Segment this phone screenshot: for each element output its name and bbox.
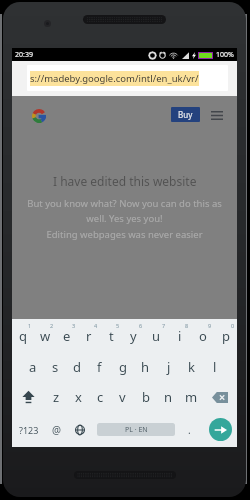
button[interactable]: z: [45, 382, 67, 412]
staticText: 20:39: [15, 50, 33, 60]
staticText: r: [86, 327, 92, 345]
staticText: y: [130, 327, 137, 345]
staticText: h: [141, 358, 150, 376]
button[interactable]: Enter: [209, 418, 232, 441]
staticText: .: [188, 423, 191, 437]
button[interactable]: m: [180, 382, 203, 412]
staticText: 2: [50, 322, 54, 329]
staticText: 0: [231, 322, 235, 329]
staticText: c: [97, 388, 104, 406]
staticText: t: [109, 327, 114, 345]
staticText: s://madeby.google.com/intl/en_uk/vr/: [30, 72, 199, 85]
other: Google: [32, 109, 46, 123]
button[interactable]: 5: [100, 319, 122, 352]
button[interactable]: Change language: [68, 412, 91, 447]
staticText: 5: [116, 322, 120, 329]
button[interactable]: d: [66, 352, 88, 382]
button[interactable]: 7: [145, 319, 168, 352]
button[interactable]: 0: [214, 319, 237, 352]
button[interactable]: c: [89, 382, 111, 412]
staticText: e: [63, 327, 71, 345]
button[interactable]: Shift: [12, 382, 45, 412]
staticText: Buy: [178, 109, 193, 120]
button[interactable]: n: [157, 382, 180, 412]
staticText: 4: [94, 322, 98, 329]
button[interactable]: 1: [12, 319, 34, 352]
button[interactable]: s: [44, 352, 66, 382]
button[interactable]: v: [111, 382, 134, 412]
staticText: o: [199, 327, 207, 345]
staticText: m: [185, 388, 198, 406]
staticText: l: [213, 358, 217, 376]
staticText: 8: [185, 322, 189, 329]
staticText: z: [53, 388, 60, 406]
button[interactable]: b: [134, 382, 157, 412]
staticText: a: [29, 358, 37, 376]
button[interactable]: j: [157, 352, 180, 382]
staticText: d: [73, 358, 81, 376]
button[interactable]: f: [88, 352, 111, 382]
button[interactable]: 9: [191, 319, 214, 352]
button[interactable]: Buy: [171, 107, 200, 122]
staticText: f: [97, 358, 102, 376]
staticText: s: [52, 358, 59, 376]
button[interactable]: k: [180, 352, 203, 382]
staticText: j: [167, 358, 171, 376]
button[interactable]: ?123: [12, 412, 45, 447]
button[interactable]: 2: [34, 319, 56, 352]
staticText: 6: [139, 322, 143, 329]
staticText: x: [75, 388, 82, 406]
button[interactable]: x: [67, 382, 89, 412]
button[interactable]: 6: [122, 319, 145, 352]
button[interactable]: Menu: [208, 107, 225, 124]
staticText: q: [19, 327, 27, 345]
staticText: 7: [162, 322, 166, 329]
staticText: n: [164, 388, 173, 406]
staticText: w: [40, 327, 51, 345]
button[interactable]: PL · EN: [91, 412, 175, 447]
button[interactable]: a: [22, 352, 44, 382]
staticText: g: [119, 358, 127, 376]
staticText: @: [52, 423, 61, 437]
button[interactable]: h: [134, 352, 157, 382]
button[interactable]: 3: [56, 319, 78, 352]
button[interactable]: Backspace: [203, 382, 237, 412]
staticText: k: [188, 358, 195, 376]
button[interactable]: .: [175, 412, 204, 447]
button[interactable]: 8: [168, 319, 191, 352]
staticText: 100%: [216, 50, 234, 60]
staticText: 9: [208, 322, 212, 329]
staticText: b: [142, 388, 150, 406]
button[interactable]: s://madeby.google.com/intl/en_uk/vr/: [27, 65, 228, 91]
staticText: 3: [72, 322, 76, 329]
button[interactable]: g: [111, 352, 134, 382]
button[interactable]: l: [203, 352, 226, 382]
staticText: u: [152, 327, 161, 345]
staticText: ?123: [19, 424, 39, 436]
staticText: i: [178, 327, 182, 345]
staticText: PL · EN: [125, 425, 148, 435]
staticText: I have edited this website: [53, 173, 197, 189]
staticText: v: [119, 388, 126, 406]
button[interactable]: @: [45, 412, 68, 447]
staticText: But you know what? Now you can do this a…: [12, 197, 237, 241]
staticText: 1: [28, 322, 32, 329]
staticText: p: [222, 327, 230, 345]
button[interactable]: 4: [78, 319, 100, 352]
